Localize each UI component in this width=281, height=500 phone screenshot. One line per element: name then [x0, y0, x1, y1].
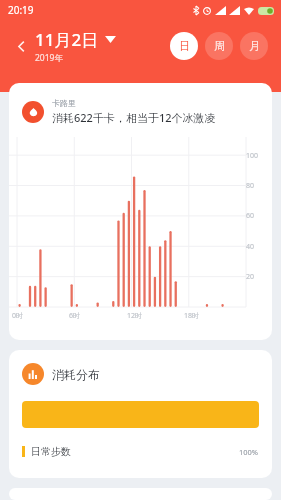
staticText: 日常步数 — [31, 445, 71, 458]
staticText: 2019年 — [35, 52, 63, 64]
staticText: 40 — [246, 242, 255, 252]
staticText: 卡路里 — [52, 98, 76, 108]
staticText: 60 — [246, 211, 255, 221]
staticText: 18时 — [184, 311, 200, 321]
button[interactable]: 11月2日 — [35, 28, 116, 64]
staticText: 日 — [179, 39, 190, 53]
staticText: 月 — [249, 39, 260, 53]
staticText: 12时 — [127, 311, 143, 321]
staticText: 80 — [246, 181, 255, 191]
button[interactable]: 卡路里 — [9, 83, 272, 340]
button[interactable]: 消耗分布 — [9, 350, 272, 478]
button[interactable]: Back — [9, 34, 33, 58]
staticText: 11月2日 — [35, 28, 99, 51]
staticText: 20:19 — [8, 3, 34, 17]
button[interactable]: 月 — [240, 32, 268, 60]
staticText: 消耗分布 — [52, 367, 100, 382]
staticText: 100% — [239, 447, 259, 457]
button[interactable]: 日 — [170, 32, 198, 60]
staticText: 消耗622千卡，相当于12个冰激凌 — [52, 110, 216, 125]
staticText: 6时 — [69, 311, 81, 321]
staticText: 0时 — [12, 311, 24, 321]
staticText: 100 — [246, 151, 259, 161]
button[interactable]: 周 — [205, 32, 233, 60]
staticText: 周 — [214, 39, 225, 53]
staticText: 20 — [246, 272, 255, 282]
